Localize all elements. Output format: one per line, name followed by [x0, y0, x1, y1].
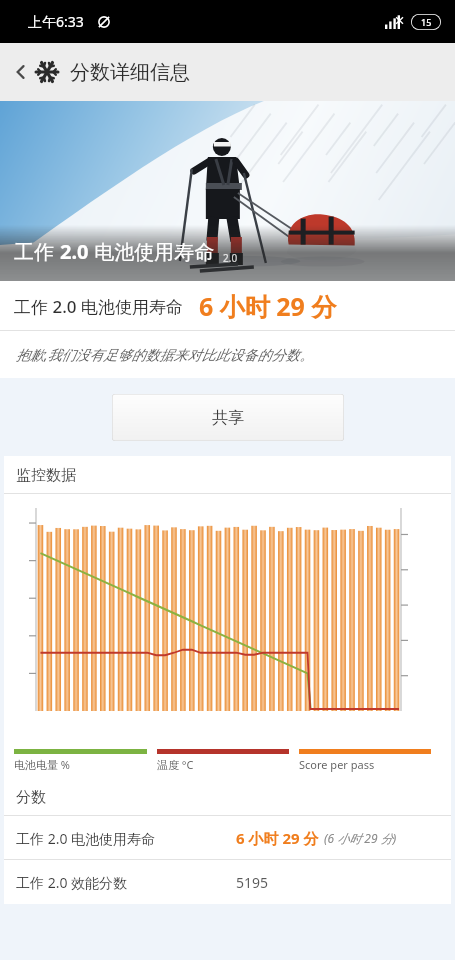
staticText: 抱歉,我们没有足够的数据来对比此设备的分数。: [16, 345, 314, 364]
staticText: 工作 2.0 电池使用寿命: [14, 295, 183, 318]
staticText: 监控数据: [16, 466, 76, 485]
staticText: 电池使用寿命: [89, 238, 215, 265]
other: Back: [10, 61, 32, 83]
staticText: Score per pass: [299, 757, 375, 772]
staticText: 工作: [14, 238, 60, 265]
staticText: 上午6:33: [28, 12, 84, 31]
staticText: 15: [421, 16, 432, 28]
staticText: 2.0: [60, 238, 89, 265]
button[interactable]: 共享: [112, 394, 344, 441]
staticText: 6 小时 29 分: [236, 828, 319, 848]
staticText: (6 小时 29 分): [324, 830, 397, 846]
staticText: 共享: [212, 408, 244, 428]
button[interactable]: 工作 2.0 电池使用寿命: [4, 816, 451, 860]
staticText: 温度 °C: [157, 757, 194, 772]
staticText: 分数: [16, 788, 46, 807]
staticText: 工作 2.0 电池使用寿命: [16, 829, 156, 848]
staticText: 电池电量 %: [14, 757, 71, 772]
button[interactable]: Back: [0, 43, 455, 101]
staticText: 工作 2.0 效能分数: [16, 873, 128, 892]
staticText: 6 小时 29 分: [199, 289, 337, 323]
button[interactable]: 工作 2.0 效能分数: [4, 860, 451, 904]
staticText: 分数详细信息: [70, 60, 190, 85]
staticText: 2.0: [223, 251, 238, 265]
staticText: 5195: [236, 873, 269, 892]
